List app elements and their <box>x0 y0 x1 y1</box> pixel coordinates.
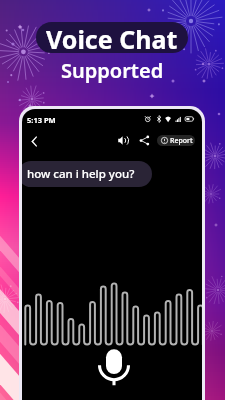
button[interactable]: Microphone <box>96 345 132 389</box>
staticText: Voice Chat <box>46 22 178 53</box>
button[interactable]: Back <box>25 132 43 150</box>
button[interactable]: how can i help you? <box>22 161 152 187</box>
staticText: 5:13 PM <box>27 115 56 125</box>
staticText: Supported <box>61 57 164 84</box>
button[interactable]: Volume <box>115 132 131 148</box>
button[interactable]: Report <box>157 135 195 146</box>
staticText: Report <box>170 136 193 146</box>
staticText: how can i help you? <box>27 166 135 182</box>
button[interactable]: Share <box>136 132 152 148</box>
